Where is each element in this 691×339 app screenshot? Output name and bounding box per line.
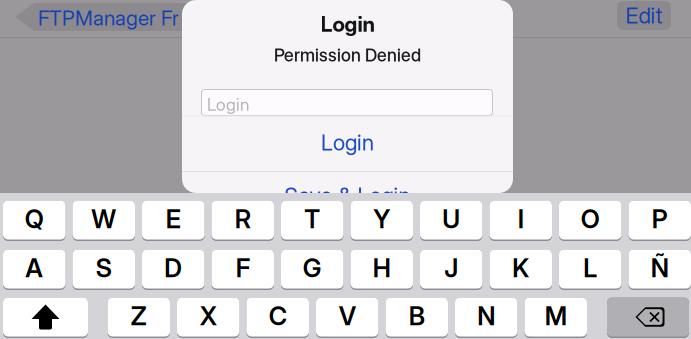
button[interactable]: P bbox=[628, 199, 691, 241]
button[interactable]: U bbox=[420, 199, 482, 241]
staticText: Permission Denied bbox=[274, 44, 421, 66]
staticText: Edit bbox=[625, 2, 662, 29]
staticText: E bbox=[166, 204, 181, 234]
button[interactable]: Z bbox=[107, 296, 170, 338]
button[interactable]: S bbox=[72, 248, 135, 290]
staticText: R bbox=[235, 204, 251, 234]
staticText: S bbox=[96, 253, 112, 283]
button[interactable]: G bbox=[281, 248, 343, 290]
staticText: Q bbox=[25, 204, 44, 234]
staticText: Login bbox=[320, 11, 374, 37]
button[interactable]: M bbox=[524, 296, 587, 338]
staticText: Save & Login bbox=[284, 182, 410, 209]
staticText: Ñ bbox=[651, 253, 669, 283]
button[interactable]: C bbox=[246, 296, 309, 338]
staticText: W bbox=[91, 204, 116, 234]
button[interactable]: X bbox=[177, 296, 239, 338]
staticText: F bbox=[236, 253, 250, 283]
staticText: A bbox=[25, 253, 43, 283]
staticText: O bbox=[581, 204, 600, 234]
staticText: H bbox=[373, 253, 391, 283]
staticText: G bbox=[303, 253, 322, 283]
button[interactable]: I bbox=[489, 199, 552, 241]
staticText: T bbox=[304, 204, 320, 234]
staticText: I bbox=[518, 204, 524, 234]
staticText: D bbox=[164, 253, 182, 283]
staticText: X bbox=[200, 301, 217, 331]
button[interactable]: B bbox=[385, 296, 448, 338]
staticText: J bbox=[444, 253, 458, 283]
button[interactable]: FTPManager Fr bbox=[15, 3, 190, 31]
staticText: P bbox=[652, 204, 668, 234]
button[interactable]: H bbox=[350, 248, 413, 290]
staticText: N bbox=[477, 301, 495, 331]
staticText: Z bbox=[131, 301, 147, 331]
staticText: U bbox=[442, 204, 460, 234]
button[interactable]: W bbox=[72, 199, 135, 241]
button[interactable]: E bbox=[142, 199, 204, 241]
button[interactable]: Shift bbox=[3, 296, 88, 338]
staticText: L bbox=[583, 253, 597, 283]
button[interactable]: Q bbox=[3, 199, 65, 241]
staticText: Y bbox=[373, 204, 390, 234]
button[interactable]: J bbox=[420, 248, 482, 290]
button[interactable]: R bbox=[211, 199, 274, 241]
staticText: Login bbox=[321, 129, 374, 156]
staticText: B bbox=[409, 301, 425, 331]
button[interactable]: F bbox=[211, 248, 274, 290]
button[interactable]: N bbox=[455, 296, 517, 338]
button[interactable]: K bbox=[489, 248, 552, 290]
button[interactable]: Login bbox=[182, 120, 513, 165]
button[interactable]: Y bbox=[350, 199, 413, 241]
button[interactable]: Ñ bbox=[628, 248, 691, 290]
button[interactable]: T bbox=[281, 199, 343, 241]
button[interactable]: A bbox=[3, 248, 65, 290]
staticText: K bbox=[512, 253, 529, 283]
staticText: M bbox=[545, 301, 567, 331]
button[interactable]: O bbox=[559, 199, 621, 241]
button[interactable]: V bbox=[316, 296, 378, 338]
button[interactable]: D bbox=[142, 248, 204, 290]
staticText: C bbox=[269, 301, 287, 331]
staticText: FTPManager Fr bbox=[38, 5, 179, 30]
staticText: Login bbox=[207, 94, 249, 115]
staticText: V bbox=[339, 301, 356, 331]
button[interactable]: Edit bbox=[617, 1, 671, 30]
button[interactable]: Delete bbox=[607, 296, 689, 338]
button[interactable]: L bbox=[559, 248, 621, 290]
button[interactable]: Save & Login bbox=[182, 173, 513, 218]
